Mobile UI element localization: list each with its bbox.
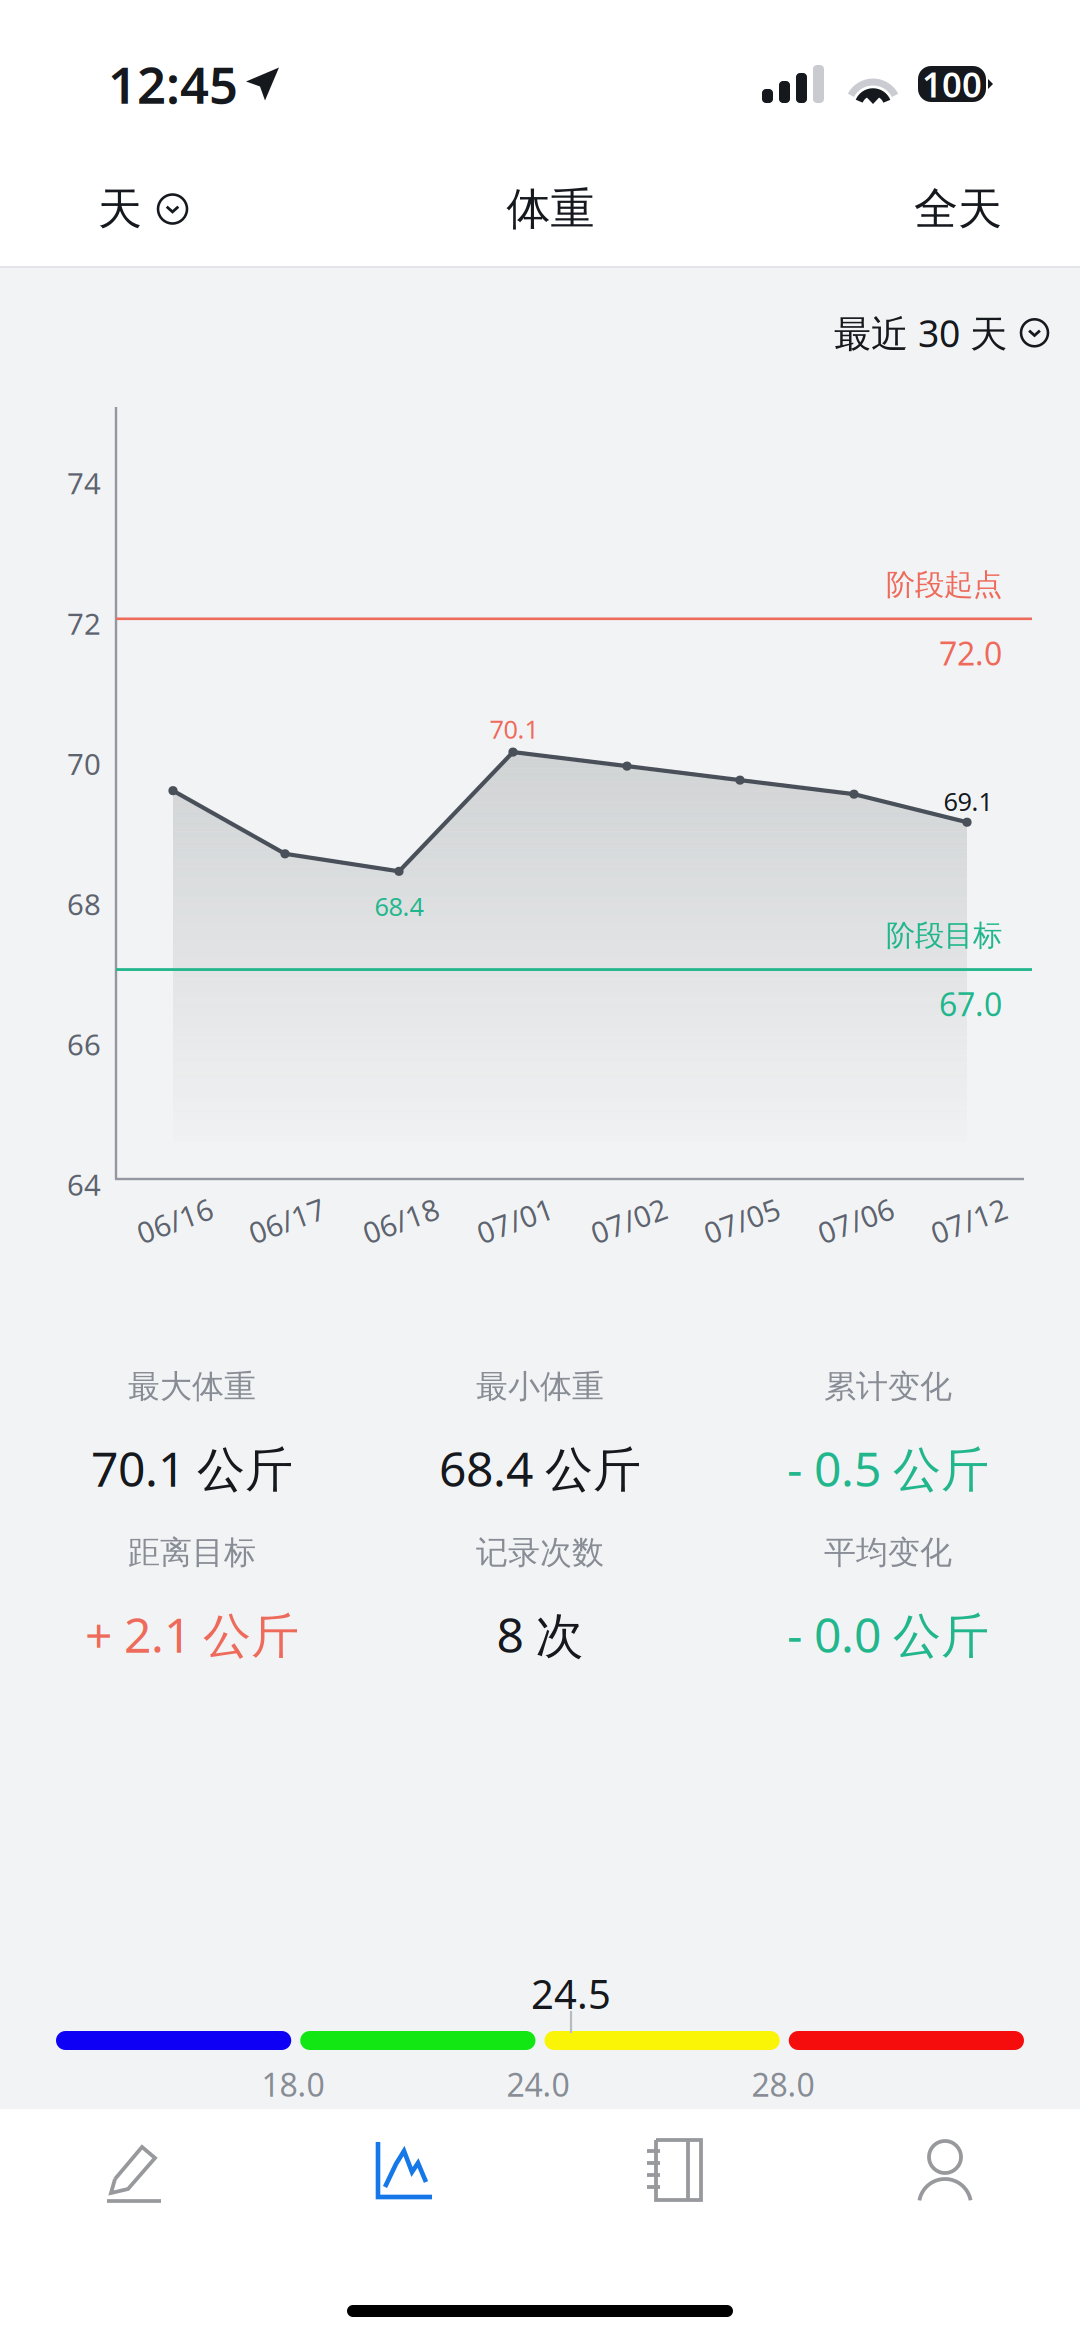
staticText: 最近 30 天 bbox=[834, 308, 1007, 358]
staticText: 07/02 bbox=[589, 1201, 668, 1240]
staticText: 阶段目标 bbox=[886, 918, 1002, 954]
staticText: 70 bbox=[67, 744, 101, 783]
staticText: 体重 bbox=[506, 182, 594, 236]
staticText: 07/12 bbox=[929, 1201, 1008, 1240]
staticText: 74 bbox=[67, 463, 101, 502]
staticText: 64 bbox=[67, 1165, 101, 1204]
staticText: 记录次数 bbox=[476, 1533, 604, 1572]
staticText: 距离目标 bbox=[128, 1533, 256, 1572]
button[interactable]: 全天 bbox=[900, 166, 1016, 252]
staticText: - 0.5 公斤 bbox=[787, 1436, 989, 1500]
staticText: 平均变化 bbox=[824, 1533, 952, 1572]
staticText: 66 bbox=[67, 1025, 101, 1064]
staticText: 07/05 bbox=[702, 1201, 781, 1240]
staticText: 72.0 bbox=[939, 632, 1002, 674]
staticText: 68 bbox=[67, 884, 101, 923]
staticText: 天 bbox=[98, 182, 142, 236]
staticText: 24.0 bbox=[506, 2063, 569, 2105]
staticText: 67.0 bbox=[939, 983, 1002, 1025]
staticText: 06/17 bbox=[247, 1201, 326, 1240]
button[interactable]: 我的 bbox=[810, 2137, 1080, 2205]
button[interactable]: 记录 bbox=[0, 2137, 270, 2205]
staticText: 100 bbox=[922, 61, 982, 107]
button[interactable]: 最近 30 天 bbox=[834, 300, 1048, 366]
staticText: 最大体重 bbox=[128, 1367, 256, 1406]
staticText: 07/01 bbox=[475, 1201, 554, 1240]
staticText: 68.4 公斤 bbox=[439, 1436, 641, 1500]
staticText: 07/06 bbox=[816, 1201, 895, 1240]
button[interactable]: 日记 bbox=[540, 2137, 810, 2205]
staticText: - 0.0 公斤 bbox=[787, 1602, 989, 1666]
staticText: 最小体重 bbox=[476, 1367, 604, 1406]
button[interactable]: 天 bbox=[84, 166, 201, 252]
staticText: 06/18 bbox=[361, 1201, 440, 1240]
staticText: 72 bbox=[67, 604, 101, 643]
staticText: 24.5 bbox=[531, 1967, 611, 2020]
staticText: 06/16 bbox=[135, 1201, 214, 1240]
staticText: 阶段起点 bbox=[886, 567, 1002, 603]
staticText: 68.4 bbox=[374, 889, 423, 923]
staticText: 全天 bbox=[914, 182, 1002, 236]
staticText: 69.1 bbox=[943, 784, 992, 818]
staticText: 28.0 bbox=[751, 2063, 814, 2105]
staticText: 12:45 bbox=[108, 50, 238, 118]
staticText: + 2.1 公斤 bbox=[85, 1602, 299, 1666]
staticText: 累计变化 bbox=[824, 1367, 952, 1406]
staticText: 70.1 公斤 bbox=[91, 1436, 293, 1500]
button[interactable]: 图表 bbox=[270, 2139, 540, 2203]
staticText: 8 次 bbox=[496, 1602, 583, 1666]
staticText: 18.0 bbox=[261, 2063, 324, 2105]
staticText: 70.1 bbox=[489, 712, 538, 746]
